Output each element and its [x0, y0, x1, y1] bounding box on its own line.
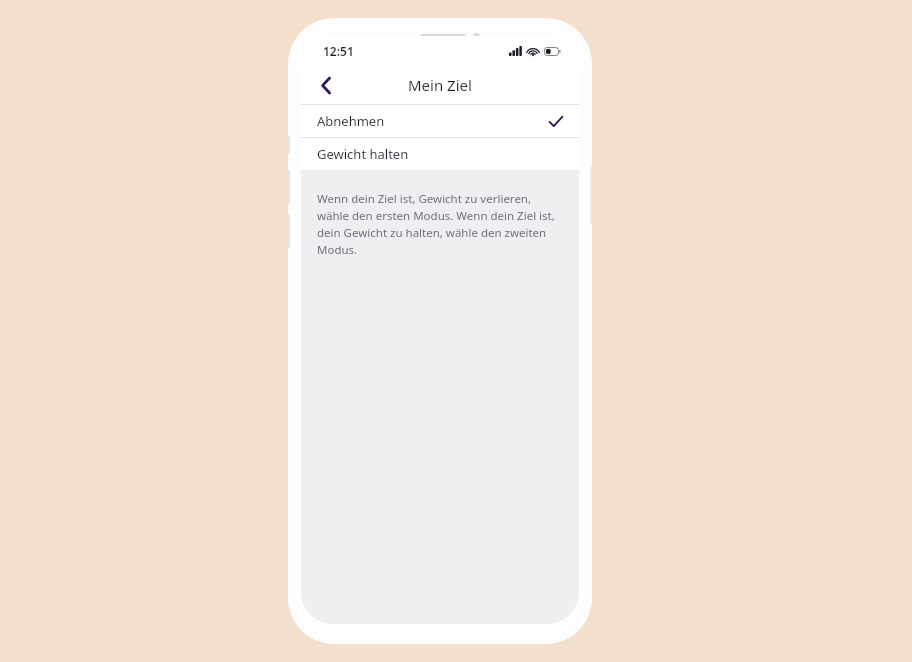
staticText: Gewicht halten: [317, 145, 409, 163]
button[interactable]: Abnehmen: [301, 105, 579, 137]
staticText: 12:51: [323, 43, 354, 59]
button[interactable]: Gewicht halten: [301, 138, 579, 170]
button[interactable]: Back: [309, 68, 343, 102]
staticText: Mein Ziel: [408, 75, 472, 95]
staticText: Abnehmen: [317, 112, 385, 130]
staticText: Wenn dein Ziel ist, Gewicht zu verlieren…: [317, 191, 565, 258]
